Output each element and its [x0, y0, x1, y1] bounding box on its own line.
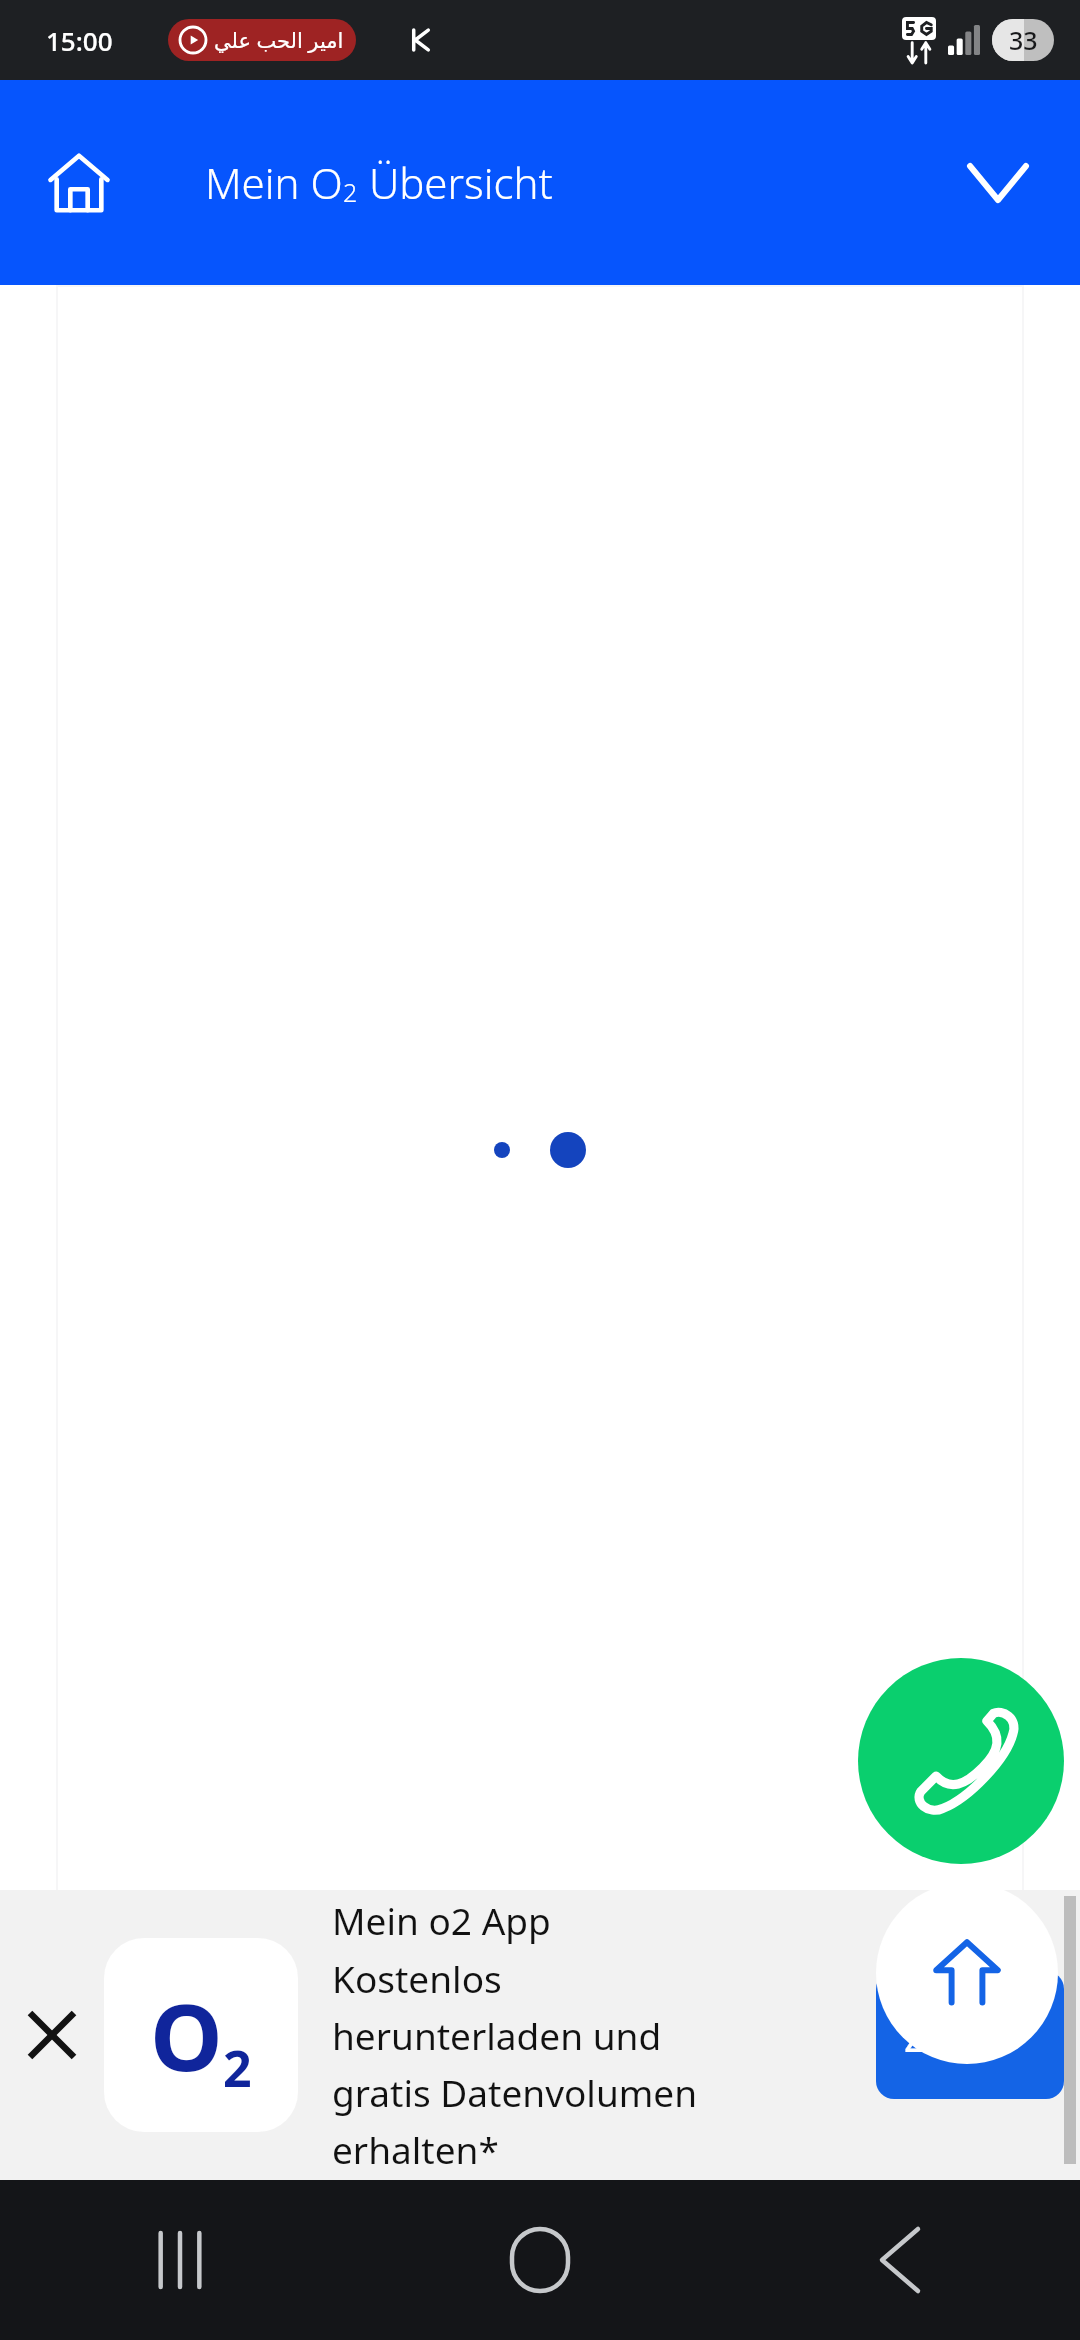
- staticText: 33: [1009, 23, 1038, 57]
- staticText: Übersicht: [358, 154, 553, 211]
- button[interactable]: Expand: [962, 147, 1034, 219]
- staticText: Kostenlos herunterladen und gratis Daten…: [332, 1953, 698, 2175]
- button[interactable]: Home: [46, 150, 112, 216]
- button[interactable]: Close: [0, 1890, 104, 2180]
- staticText: 15:00: [46, 23, 113, 58]
- staticText: O: [150, 1973, 223, 2098]
- staticText: Z: [904, 2007, 929, 2064]
- staticText: Mein O: [205, 154, 343, 211]
- staticText: امير الحب علي: [214, 26, 344, 55]
- button[interactable]: Scroll to top: [876, 1882, 1058, 2064]
- button[interactable]: Z: [876, 1971, 1064, 2099]
- button[interactable]: Home: [360, 2180, 720, 2340]
- staticText: Mein o2 App: [332, 1895, 551, 1945]
- button[interactable]: Recents: [0, 2180, 360, 2340]
- staticText: 2: [223, 2034, 252, 2102]
- button[interactable]: Call: [858, 1658, 1064, 1864]
- staticText: 2: [343, 175, 358, 209]
- button[interactable]: Back: [720, 2180, 1080, 2340]
